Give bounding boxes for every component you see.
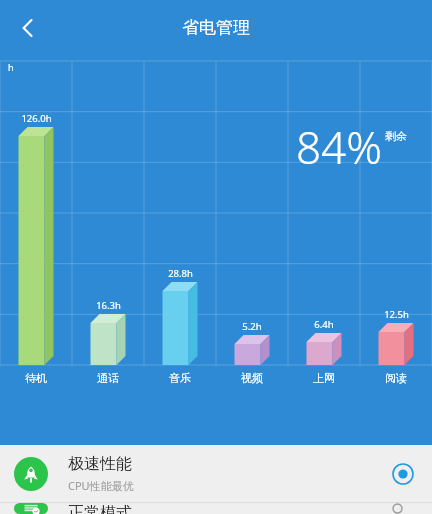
staticText: 阅读 <box>385 371 407 385</box>
staticText: 极速性能 <box>68 454 132 474</box>
staticText: 通话 <box>97 371 119 385</box>
staticText: 6.4h <box>314 318 334 331</box>
staticText: 5.2h <box>242 320 262 333</box>
staticText: 省电管理 <box>182 17 250 38</box>
staticText: 剩余 <box>385 129 407 143</box>
staticText: 待机 <box>25 371 47 385</box>
staticText: 126.0h <box>21 112 52 125</box>
staticText: CPU性能最优 <box>68 478 134 493</box>
staticText: 上网 <box>313 371 335 385</box>
staticText: h <box>8 61 14 73</box>
staticText: 12.5h <box>384 308 409 321</box>
button[interactable]: 极速性能 <box>0 445 432 502</box>
staticText: 28.8h <box>168 267 193 280</box>
staticText: 84% <box>296 117 382 177</box>
staticText: 视频 <box>241 371 263 385</box>
staticText: 16.3h <box>96 299 121 312</box>
staticText: 音乐 <box>169 371 191 385</box>
button[interactable]: Back <box>6 6 50 50</box>
staticText: 正常模式 <box>68 503 132 514</box>
button[interactable]: 正常模式 <box>0 503 432 514</box>
